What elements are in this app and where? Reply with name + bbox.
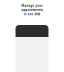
staticText: appointments (21, 8, 42, 12)
staticText: in one click (23, 12, 40, 16)
staticText: Manage your (21, 4, 42, 7)
